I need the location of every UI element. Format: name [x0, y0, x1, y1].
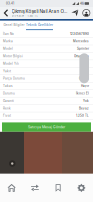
staticText: Parça Durumu — [3, 77, 25, 80]
staticText: Çıkma — [79, 77, 89, 80]
staticText: Teknik Özellikler — [26, 23, 53, 27]
staticText: Motor Bilgisi — [3, 54, 23, 58]
button[interactable]: Satıcıya Mesaj Gönder — [2, 122, 91, 132]
staticText: Mercedes — [73, 39, 89, 43]
staticText: Marka — [3, 39, 13, 43]
button[interactable]: Genel Bilgiler — [2, 21, 26, 30]
staticText: Ortaparça — [74, 54, 89, 58]
staticText: Model — [3, 47, 13, 50]
staticText: Yok — [83, 99, 89, 103]
staticText: Garanti — [3, 99, 14, 103]
button[interactable]: Home — [0, 174, 23, 202]
staticText: Çıkmış Köşeli Nail Aran Ortaparçası — [12, 9, 68, 14]
button[interactable]: Settings — [70, 174, 93, 202]
staticText: Sprinter — [77, 47, 89, 50]
staticText: Fiyat — [3, 114, 11, 117]
button[interactable]: Account — [81, 7, 93, 19]
button[interactable]: Teknik Özellikler — [26, 21, 53, 30]
staticText: Hayır — [81, 84, 89, 88]
staticText: Takas — [3, 84, 13, 88]
staticText: 03:41 — [6, 2, 14, 5]
staticText: Beyaz — [79, 107, 89, 110]
button[interactable]: Saved — [46, 174, 70, 202]
staticText: İkinci El — [76, 92, 89, 95]
staticText: 1.250 TL — [76, 114, 89, 117]
staticText: İlan No — [3, 32, 14, 36]
staticText: 07.04.2024 · 1.250 TL — [12, 14, 38, 17]
staticText: 1234567890 — [70, 32, 89, 36]
staticText: 46 — [80, 1, 84, 6]
staticText: Genel Bilgiler — [3, 23, 24, 27]
button[interactable]: Compare — [23, 174, 46, 202]
staticText: Yakıt — [3, 69, 11, 73]
button[interactable]: Back — [0, 7, 12, 19]
staticText: Satıcıya Mesaj Gönder — [28, 125, 65, 129]
staticText: Durumu — [3, 92, 15, 95]
button[interactable]: Share — [69, 7, 81, 19]
staticText: Renk — [3, 107, 11, 110]
staticText: Model Yılı — [3, 62, 19, 65]
